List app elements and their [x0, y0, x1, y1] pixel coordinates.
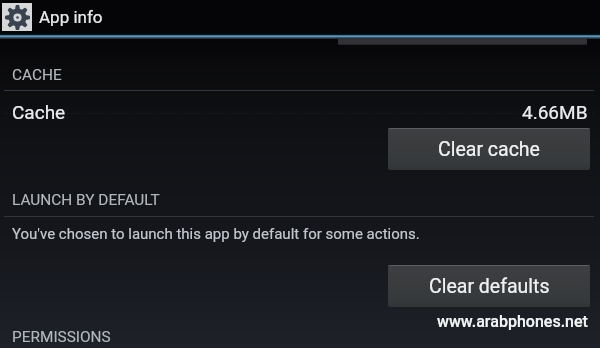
staticText: Clear defaults: [429, 275, 550, 298]
staticText: 4.66MB: [522, 101, 588, 123]
staticText: Cache: [12, 101, 66, 123]
staticText: www.arabphones.net: [437, 312, 588, 331]
button[interactable]: Cache: [0, 99, 600, 125]
button[interactable]: Clear cache: [388, 128, 590, 170]
staticText: Clear cache: [438, 138, 540, 161]
button[interactable]: Settings: [0, 0, 600, 33]
staticText: App info: [39, 7, 103, 27]
staticText: You've chosen to launch this app by defa…: [12, 225, 420, 243]
staticText: LAUNCH BY DEFAULT: [12, 191, 160, 209]
staticText: CACHE: [12, 66, 62, 84]
button[interactable]: Clear defaults: [388, 265, 590, 307]
staticText: PERMISSIONS: [12, 328, 111, 346]
other: Settings: [2, 3, 32, 31]
